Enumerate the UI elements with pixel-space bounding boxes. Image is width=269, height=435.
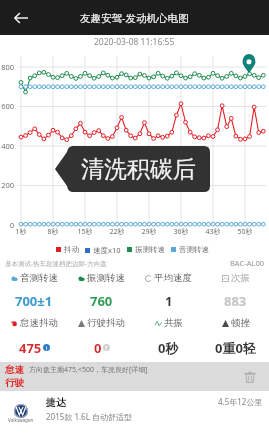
staticText: 0秒 [158,339,179,355]
button[interactable]: 行驶抖动 [68,316,135,330]
staticText: 怠速抖动 [20,317,58,329]
staticText: 0 [94,339,102,355]
staticText: 400 [0,141,14,151]
staticText: 抖动 [64,245,79,254]
button[interactable]: 平均速度 [135,271,202,285]
staticText: 音测转速 [20,272,58,284]
staticText: 行驶 [5,377,24,389]
staticText: 760 [90,292,113,308]
staticText: Volkswagen [8,417,34,423]
staticText: ? [105,344,108,351]
staticText: 1秒 [11,227,31,237]
button[interactable]: 音测转速 [0,271,68,285]
button[interactable]: 顿挫 [202,316,269,330]
button[interactable]: 次振 [202,271,269,285]
staticText: 2015款 1.6L 自动舒适型 [46,411,132,422]
button[interactable]: 0重0轻 [202,339,269,355]
button[interactable]: 0 [68,339,135,355]
button[interactable]: 1 [135,292,202,308]
button[interactable]: 760 [68,292,135,308]
staticText: 音测转速 [179,245,209,254]
staticText: 800 [0,62,14,72]
staticText: 2020-03-08 11:16:55 [94,36,175,48]
button[interactable]: 475 [0,339,68,355]
staticText: 振测转速 [135,245,165,254]
staticText: 883 [224,292,247,308]
staticText: 怠速 [5,364,24,376]
staticText: 8秒 [43,227,63,237]
staticText: 29秒 [139,227,159,237]
staticText: 捷达 [46,396,66,409]
button[interactable]: 883 [202,292,269,308]
staticText: 0重0轻 [215,339,256,355]
staticText: 顿挫 [231,317,250,329]
button[interactable]: Back [0,1,42,35]
button[interactable]: 怠速抖动 [0,316,68,330]
button[interactable]: 700±1 [0,292,68,308]
staticText: 22秒 [107,227,127,237]
staticText: 600 [0,101,14,111]
staticText: 15秒 [75,227,95,237]
button[interactable]: Volkswagen [0,391,269,435]
staticText: 振测转速 [87,272,125,284]
staticText: 清洗积碳后 [81,155,196,184]
staticText: 1 [165,292,173,308]
button[interactable]: 振测转速 [127,245,165,254]
staticText: 友趣安驾-发动机心电图 [80,11,189,25]
button[interactable]: 共振 [135,316,202,330]
button[interactable]: 0秒 [135,339,202,355]
staticText: 4.5年12公里 [218,396,263,407]
staticText: 方向盘主频475,<500，车况良好[详细] [29,365,148,375]
staticText: 次振 [231,272,250,284]
staticText: 43秒 [203,227,223,237]
staticText: 行驶抖动 [87,317,125,329]
staticText: 36秒 [171,227,191,237]
button[interactable]: 音测转速 [171,245,209,254]
button[interactable]: 抖动 [56,245,79,254]
staticText: 基本测试-热车怠速档把边际-方向盘 [5,259,107,268]
staticText: BAC-AL00 [230,258,264,268]
button[interactable]: 速度x10 [85,245,121,255]
staticText: 平均速度 [154,272,192,284]
staticText: 速度x10 [93,245,121,255]
staticText: 200 [0,180,14,190]
staticText: 50秒 [235,227,255,237]
button[interactable]: Delete [241,368,259,386]
button[interactable]: 振测转速 [68,271,135,285]
button[interactable]: 清洗积碳后 [55,146,210,192]
staticText: 700±1 [15,292,53,308]
staticText: 0 [0,220,14,230]
staticText: 共振 [164,317,183,329]
staticText: 475 [19,339,42,355]
staticText: i [46,344,48,351]
